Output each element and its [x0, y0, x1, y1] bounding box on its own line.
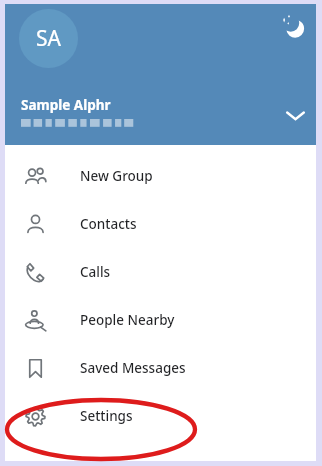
staticText: Sample Alphr [21, 96, 111, 114]
staticText: Contacts [80, 215, 137, 233]
staticText: Settings [80, 407, 133, 425]
button[interactable]: Expand accounts [280, 100, 310, 130]
staticText: Saved Messages [80, 359, 186, 377]
button[interactable]: SA [19, 9, 78, 68]
button[interactable]: New Group [5, 152, 316, 200]
button[interactable]: Calls [5, 248, 316, 296]
button[interactable]: Contacts [5, 200, 316, 248]
button[interactable]: Toggle night mode [276, 9, 308, 41]
button[interactable]: Settings [5, 392, 316, 440]
staticText: People Nearby [80, 311, 175, 329]
staticText: SA [36, 24, 61, 53]
button[interactable]: Saved Messages [5, 344, 316, 392]
staticText: New Group [80, 167, 153, 185]
staticText: Calls [80, 263, 111, 281]
button[interactable]: People Nearby [5, 296, 316, 344]
